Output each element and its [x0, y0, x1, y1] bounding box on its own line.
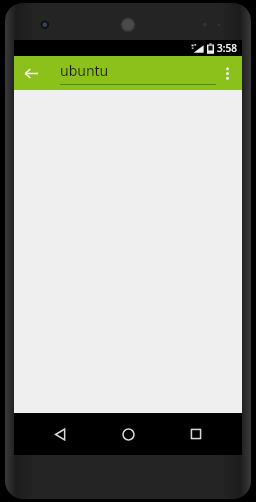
button[interactable]: ubuntu	[60, 61, 216, 85]
button[interactable]: Back	[38, 413, 82, 455]
button[interactable]: Home	[106, 413, 150, 455]
button[interactable]: Recent apps	[174, 413, 218, 455]
button[interactable]: Navigate up	[17, 59, 45, 87]
staticText: ubuntu	[60, 61, 109, 80]
button[interactable]: More options	[214, 60, 240, 86]
staticText: 3:58	[217, 41, 237, 55]
